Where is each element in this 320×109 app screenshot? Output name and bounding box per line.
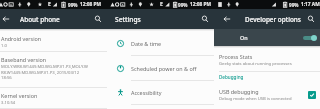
staticText: Android version: [1, 35, 42, 42]
button[interactable]: Search: [196, 9, 214, 29]
staticText: On: [240, 34, 248, 41]
button[interactable]: On: [214, 29, 320, 46]
staticText: Accessibility: [131, 89, 162, 96]
staticText: Kernel version: [1, 92, 38, 99]
staticText: Settings: [115, 15, 141, 24]
staticText: E: [48, 1, 51, 8]
staticText: Baseband version: [1, 56, 47, 63]
staticText: 12:08 PM: [190, 1, 212, 8]
staticText: 99%: [68, 2, 78, 8]
staticText: 99%: [289, 2, 299, 8]
button[interactable]: USB debugging checkbox: [308, 91, 316, 99]
button[interactable]: Baseband version: [0, 52, 107, 87]
button[interactable]: USB debugging: [214, 88, 320, 102]
staticText: Date & time: [131, 40, 162, 47]
staticText: Scheduled power on & off: [131, 65, 197, 72]
button[interactable]: Kernel version: [0, 88, 107, 108]
button[interactable]: Back: [0, 9, 12, 29]
button[interactable]: Accessibility: [107, 81, 214, 104]
button[interactable]: Android version: [0, 31, 107, 51]
button[interactable]: Search: [89, 9, 107, 29]
button[interactable]: Back: [214, 9, 240, 29]
staticText: Process Stats: [219, 53, 253, 60]
staticText: Debugging: [219, 74, 244, 80]
button[interactable]: Process Stats: [214, 53, 320, 67]
staticText: 1.0: [1, 43, 7, 49]
staticText: About phone: [20, 15, 60, 24]
staticText: Debug mode when USB is connected: [219, 96, 292, 102]
button[interactable]: Scheduled power on & off: [107, 56, 214, 80]
staticText: 1:17 AM: [301, 1, 320, 8]
button[interactable]: Search: [302, 9, 320, 29]
staticText: 99%: [178, 2, 188, 8]
staticText: USB debugging: [219, 88, 259, 95]
button[interactable]: Date & time: [107, 31, 214, 55]
staticText: Developer options: [245, 15, 301, 24]
staticText: 3.10.54: [1, 100, 16, 106]
staticText: 12:08 PM: [80, 1, 102, 8]
staticText: Geeky stats about running processes: [219, 61, 292, 67]
staticText: E: [160, 1, 163, 8]
staticText: MOLY.WR8.W1449.MD.WG.MP.V1.P3,MOLY.W R8.…: [1, 64, 88, 80]
